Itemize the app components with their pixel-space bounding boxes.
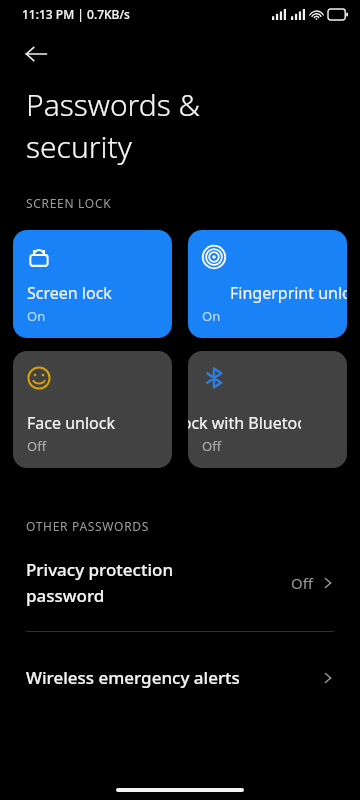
other: Unlock with Bluetooth device — [202, 366, 226, 390]
staticText: Off — [202, 437, 222, 455]
button[interactable]: Face unlock — [13, 351, 172, 468]
staticText: Face unlock — [27, 412, 115, 434]
button[interactable]: Fingerprint unlock — [188, 230, 347, 338]
staticText: Off — [27, 437, 47, 455]
staticText: Screen lock — [27, 282, 112, 304]
staticText: Unlock with Bluetooth device — [188, 412, 301, 434]
staticText: Passwords & security — [26, 84, 201, 167]
staticText: Privacy protection password — [26, 558, 291, 607]
staticText: Off — [291, 573, 314, 593]
staticText: On — [27, 307, 46, 325]
staticText: Wireless emergency alerts — [26, 666, 322, 689]
button[interactable]: Unlock with Bluetooth device — [188, 351, 347, 468]
button[interactable]: Privacy protection password — [0, 556, 360, 609]
other: Fingerprint unlock — [202, 245, 226, 269]
staticText: 11:13 PM | 0.7KB/s — [22, 6, 130, 22]
staticText: On — [202, 307, 221, 325]
button[interactable]: Screen lock — [13, 230, 172, 338]
staticText: Fingerprint unlock — [230, 282, 347, 304]
button[interactable]: Back — [14, 32, 58, 76]
other: Face unlock — [27, 366, 51, 390]
staticText: SCREEN LOCK — [26, 195, 112, 211]
button[interactable]: Wireless emergency alerts — [0, 664, 360, 691]
other: Screen lock — [27, 245, 51, 269]
staticText: OTHER PASSWORDS — [26, 518, 150, 534]
